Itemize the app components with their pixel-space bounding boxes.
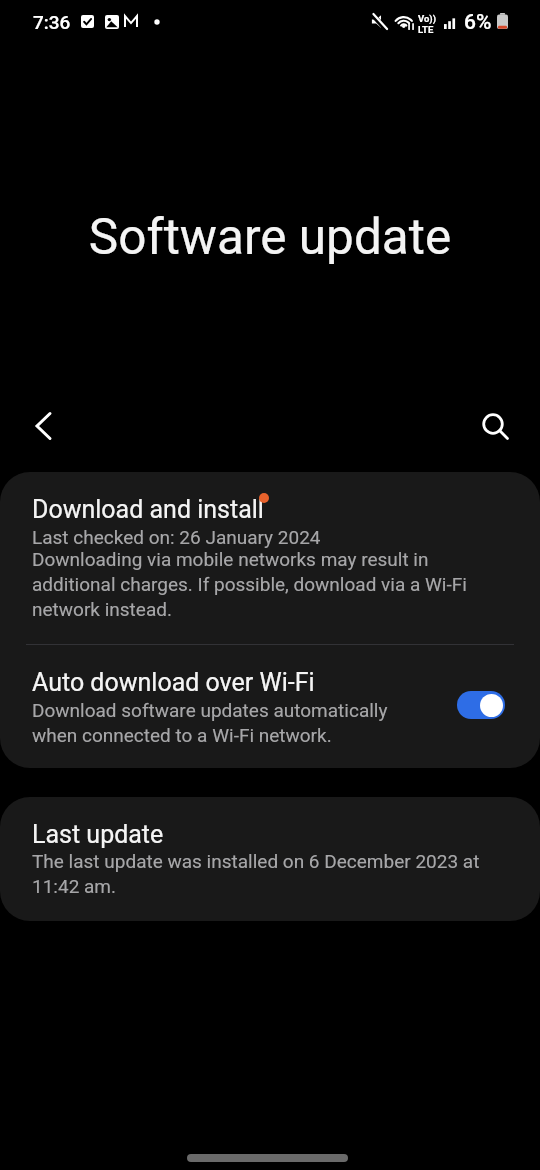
button[interactable]: Auto download over Wi-Fi	[457, 691, 505, 719]
staticText: Software update	[0, 208, 540, 266]
staticText: Auto download over Wi-Fi	[32, 668, 315, 697]
button[interactable]: Last update	[0, 797, 540, 921]
button[interactable]: Search	[472, 403, 515, 446]
staticText: Download software updates automatically …	[32, 699, 392, 747]
staticText: Download and install	[32, 495, 264, 524]
button[interactable]: Auto download over Wi-Fi	[0, 645, 540, 768]
staticText: Last checked on: 26 January 2024	[32, 526, 321, 548]
staticText: Vo))	[418, 13, 437, 24]
staticText: 7:36	[33, 11, 71, 33]
staticText: The last update was installed on 6 Decem…	[32, 850, 512, 898]
staticText: LTE	[418, 24, 434, 35]
staticText: 6%	[464, 10, 492, 35]
button[interactable]: Download and install	[0, 472, 540, 644]
button[interactable]: Back	[23, 403, 66, 446]
staticText: Last update	[32, 820, 164, 849]
staticText: Downloading via mobile networks may resu…	[32, 548, 512, 621]
